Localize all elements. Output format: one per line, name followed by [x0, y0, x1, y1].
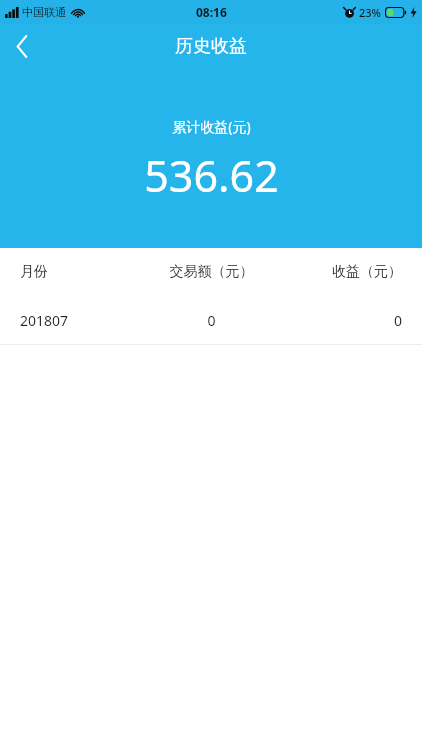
staticText: 0 — [283, 311, 402, 330]
staticText: 0 — [140, 311, 283, 330]
staticText: 23% — [359, 5, 381, 20]
staticText: 月份 — [20, 263, 140, 281]
staticText: 中国联通 — [22, 5, 66, 19]
staticText: 历史收益 — [175, 35, 247, 58]
staticText: 累计收益(元) — [172, 117, 251, 136]
staticText: 收益（元） — [283, 263, 402, 281]
button[interactable]: Back — [0, 24, 44, 68]
staticText: 201807 — [20, 311, 140, 330]
staticText: 交易额（元） — [140, 263, 283, 281]
button[interactable]: 201807 — [0, 296, 422, 344]
staticText: 536.62 — [144, 146, 279, 205]
staticText: 08:16 — [196, 4, 227, 20]
